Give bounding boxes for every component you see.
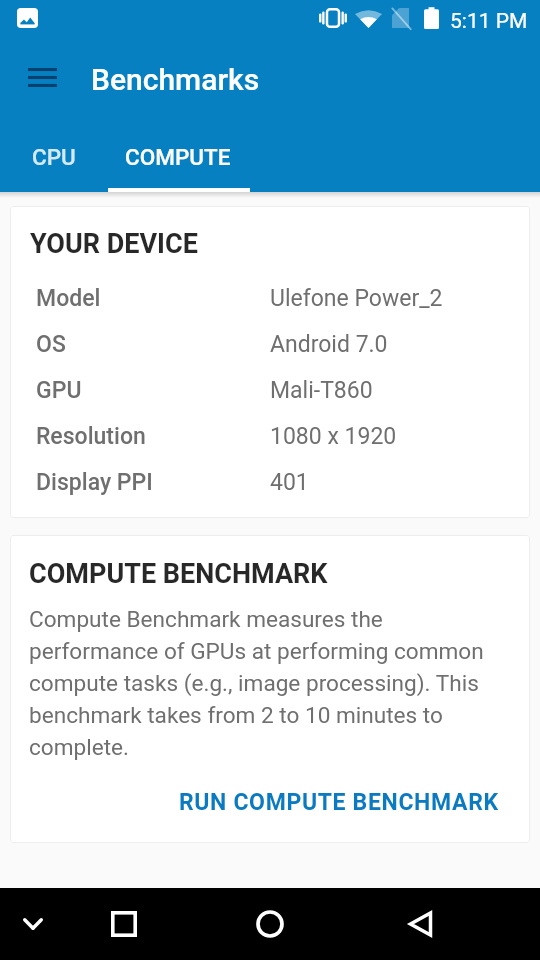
staticText: Benchmarks [91,62,260,97]
staticText: 401 [270,469,309,496]
button[interactable]: COMPUTE [108,123,248,190]
staticText: Android 7.0 [270,331,388,358]
button[interactable]: Hide keyboard [5,888,61,960]
staticText: Display PPI [36,469,153,496]
button[interactable]: CPU [0,123,108,190]
staticText: Ulefone Power_2 [270,285,443,312]
staticText: 5:11 PM [450,9,528,34]
button[interactable]: RUN COMPUTE BENCHMARK [167,779,511,826]
staticText: OS [36,331,66,358]
staticText: COMPUTE BENCHMARK [29,558,328,590]
button[interactable]: Recent apps [95,888,152,960]
staticText: YOUR DEVICE [30,228,198,260]
button[interactable]: Open navigation drawer [18,55,66,99]
staticText: RUN COMPUTE BENCHMARK [179,789,499,816]
button[interactable]: Home [241,888,298,960]
staticText: Compute Benchmark measures the performan… [29,606,495,761]
staticText: Model [36,285,101,312]
button[interactable]: Back [392,888,448,960]
staticText: GPU [36,377,82,404]
staticText: Mali-T860 [270,377,373,404]
staticText: 1080 x 1920 [270,423,397,450]
staticText: COMPUTE [125,144,231,170]
staticText: CPU [32,144,76,170]
staticText: Resolution [36,423,146,450]
